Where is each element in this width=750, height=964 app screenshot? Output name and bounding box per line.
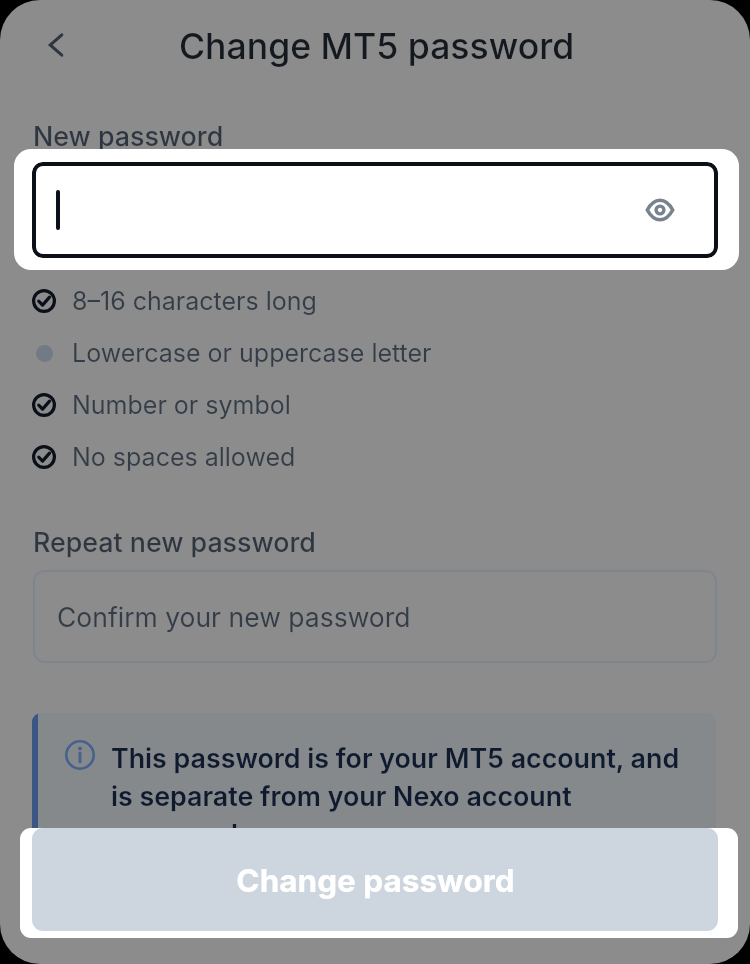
staticText: This password is for your MT5 account, a…: [111, 742, 701, 851]
staticText: Number or symbol: [72, 390, 291, 420]
button[interactable]: Back: [26, 15, 86, 75]
button[interactable]: Number or symbol: [32, 379, 750, 431]
button[interactable]: Lowercase or uppercase letter: [32, 327, 750, 379]
staticText: Confirm your new password: [57, 601, 411, 633]
staticText: No spaces allowed: [72, 442, 296, 472]
button[interactable]: Show password: [32, 162, 718, 258]
button[interactable]: Show password: [636, 186, 684, 234]
staticText: Change password: [236, 861, 515, 899]
staticText: Repeat new password: [33, 526, 316, 558]
button[interactable]: No spaces allowed: [32, 431, 750, 483]
staticText: Change MT5 password: [179, 25, 575, 68]
staticText: Lowercase or uppercase letter: [72, 338, 432, 368]
staticText: New password: [33, 120, 224, 152]
staticText: 8–16 characters long: [72, 286, 317, 316]
button[interactable]: 8–16 characters long: [32, 275, 750, 327]
button[interactable]: Change password: [32, 828, 718, 931]
button[interactable]: Confirm your new password: [33, 570, 717, 663]
